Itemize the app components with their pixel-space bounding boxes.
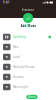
staticText: 9:41 [3,1,10,4]
button[interactable]: Done [26,95,37,99]
button[interactable]: Lucid [0,52,56,62]
staticText: Nobody Knows [13,65,34,69]
button[interactable]: Moonlight [0,82,56,92]
staticText: Horizon [13,75,24,79]
staticText: Lucid [13,55,20,59]
button[interactable]: Echo [0,42,56,52]
staticText: Uplifting [13,35,26,39]
button[interactable]: Uplifting [0,32,56,42]
staticText: Moonlight [13,85,28,89]
staticText: Vicetone [21,8,34,12]
staticText: Done [28,95,36,99]
button[interactable]: Nobody Knows [0,62,56,72]
staticText: Echo [13,45,19,49]
button[interactable]: Horizon [0,72,56,82]
staticText: Add Music [20,24,35,28]
